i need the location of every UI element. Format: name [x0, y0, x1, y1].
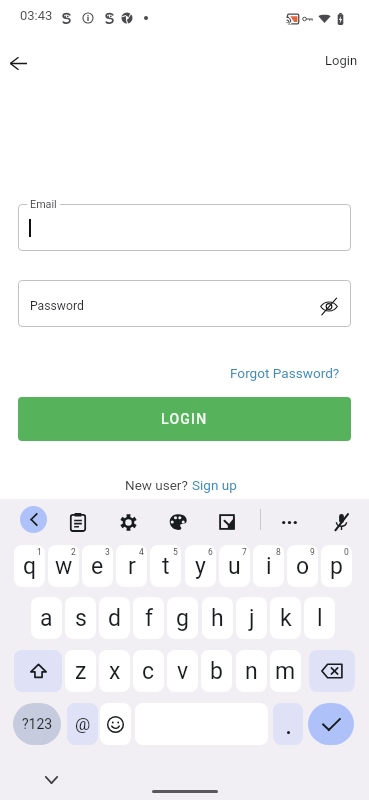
button[interactable]: Enter	[308, 703, 354, 745]
button[interactable]: k	[270, 597, 301, 639]
button[interactable]: d	[99, 597, 130, 639]
button[interactable]: s	[65, 597, 96, 639]
staticText: l	[317, 605, 323, 632]
button[interactable]: ?123	[13, 703, 61, 745]
staticText: 4	[139, 547, 144, 557]
button[interactable]: m	[270, 650, 301, 692]
staticText: i	[266, 553, 272, 580]
staticText: Email	[30, 198, 57, 211]
button[interactable]: One handed mode	[210, 505, 244, 539]
button[interactable]: Emoji	[100, 703, 131, 745]
button[interactable]: LOGIN	[18, 397, 351, 441]
staticText: 9	[310, 547, 315, 557]
staticText: o	[296, 553, 310, 580]
button[interactable]: e	[82, 545, 113, 587]
staticText: m	[275, 658, 296, 685]
staticText: a	[40, 605, 53, 632]
button[interactable]: p	[321, 545, 352, 587]
button[interactable]	[273, 703, 303, 745]
staticText: d	[108, 605, 121, 632]
button[interactable]: y	[185, 545, 216, 587]
staticText: LOGIN	[161, 411, 208, 427]
staticText: q	[23, 553, 37, 580]
button[interactable]: n	[236, 650, 267, 692]
button[interactable]: q	[14, 545, 45, 587]
staticText: 0	[344, 547, 349, 557]
staticText: 2	[71, 547, 76, 557]
button[interactable]: w	[48, 545, 79, 587]
staticText: Sign up	[192, 477, 237, 493]
button[interactable]: Themes	[161, 505, 195, 539]
button[interactable]: o	[287, 545, 318, 587]
staticText: g	[176, 605, 189, 632]
staticText: 6	[208, 547, 213, 557]
button[interactable]: Forgot Password?	[224, 362, 346, 384]
button[interactable]: f	[133, 597, 164, 639]
button[interactable]: Clipboard	[61, 505, 95, 539]
button[interactable]: Hide keyboard	[38, 767, 64, 793]
staticText: 3	[105, 547, 110, 557]
button[interactable]: Sign up	[192, 477, 237, 493]
button[interactable]: Previous suggestion	[20, 506, 47, 533]
button[interactable]: t	[150, 545, 181, 587]
staticText: c	[142, 658, 155, 685]
staticText: t	[162, 553, 170, 580]
button[interactable]: v	[167, 650, 198, 692]
button[interactable]: z	[65, 650, 96, 692]
button[interactable]: c	[133, 650, 164, 692]
staticText: h	[211, 605, 224, 632]
staticText: x	[109, 658, 121, 685]
button[interactable]: Settings	[111, 505, 145, 539]
staticText: u	[228, 553, 241, 580]
button[interactable]: j	[236, 597, 267, 639]
staticText: w	[55, 553, 73, 580]
staticText: Password	[30, 299, 84, 313]
button[interactable]: u	[219, 545, 250, 587]
staticText: 7	[242, 547, 247, 557]
staticText: y	[195, 553, 206, 580]
staticText: v	[177, 658, 189, 685]
staticText: 03:43	[20, 8, 53, 23]
button[interactable]: Login	[317, 50, 366, 71]
button[interactable]: Show password	[316, 293, 342, 319]
button[interactable]: r	[116, 545, 147, 587]
button[interactable]: More options	[272, 505, 306, 539]
button[interactable]: g	[167, 597, 198, 639]
staticText: 5	[173, 547, 178, 557]
staticText: Login	[325, 53, 358, 68]
button[interactable]: @	[67, 703, 98, 745]
button[interactable]: l	[304, 597, 335, 639]
button[interactable]: Voice input disabled	[324, 505, 358, 539]
button[interactable]: Password	[18, 280, 351, 327]
button[interactable]: Backspace	[309, 650, 355, 692]
staticText: @	[75, 714, 91, 734]
staticText: s	[75, 605, 87, 632]
button[interactable]: h	[202, 597, 233, 639]
staticText: n	[245, 658, 258, 685]
staticText: 8	[276, 547, 281, 557]
staticText: New user?	[125, 477, 188, 493]
staticText: b	[210, 658, 223, 685]
button[interactable]: i	[253, 545, 284, 587]
staticText: Forgot Password?	[230, 365, 340, 381]
button[interactable]: b	[201, 650, 232, 692]
button[interactable]: Back	[0, 41, 40, 85]
staticText: e	[91, 553, 104, 580]
staticText: ?123	[22, 716, 53, 732]
button[interactable]: x	[99, 650, 130, 692]
button[interactable]: Email	[18, 204, 351, 251]
staticText: k	[280, 605, 292, 632]
staticText: j	[249, 605, 255, 632]
staticText: z	[75, 658, 87, 685]
button[interactable]: a	[31, 597, 62, 639]
staticText: p	[330, 553, 343, 580]
staticText: r	[128, 553, 136, 580]
staticText: f	[145, 605, 153, 632]
button[interactable]: Shift	[14, 650, 62, 692]
staticText: 1	[37, 547, 42, 557]
